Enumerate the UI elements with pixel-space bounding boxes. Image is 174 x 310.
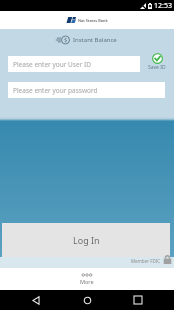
button[interactable]: Recent apps	[123, 290, 153, 310]
staticText: Nat States Bank	[78, 18, 108, 23]
staticText: More	[80, 278, 94, 285]
button[interactable]: Back	[21, 290, 51, 310]
button[interactable]: Please enter your password	[8, 82, 165, 98]
staticText: Save ID	[148, 64, 166, 71]
staticText: Please enter your User ID	[13, 60, 91, 69]
staticText: Please enter your password	[13, 86, 98, 95]
staticText: 12:53	[154, 1, 172, 11]
button[interactable]: Log In	[2, 223, 170, 257]
button[interactable]: $	[0, 34, 174, 46]
button[interactable]: Please enter your User ID	[8, 56, 140, 72]
button[interactable]: Home	[72, 290, 102, 310]
staticText: $	[64, 36, 68, 44]
button[interactable]: More	[0, 268, 174, 289]
staticText: Log In	[73, 234, 100, 246]
button[interactable]: Save ID	[144, 53, 170, 71]
staticText: Instant Balance	[73, 36, 117, 44]
staticText: Member FDIC	[131, 258, 161, 264]
